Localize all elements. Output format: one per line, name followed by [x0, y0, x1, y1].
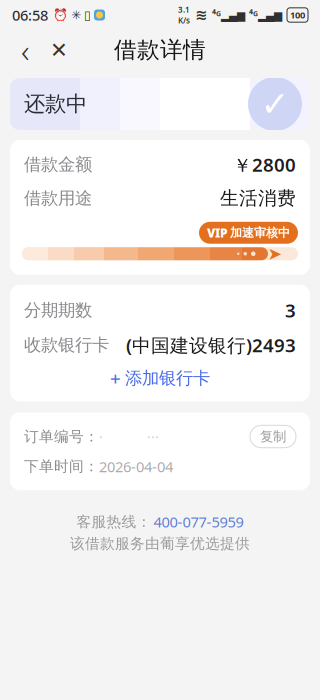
- button[interactable]: 关闭: [42, 30, 76, 70]
- staticText: 100: [290, 9, 305, 21]
- staticText: ≋: [195, 7, 207, 23]
- staticText: 06:58: [12, 5, 48, 25]
- button[interactable]: 返回: [8, 30, 42, 70]
- staticText: 400-077-5959: [153, 512, 243, 532]
- staticText: 借款用途: [24, 188, 92, 209]
- staticText: 还款中: [24, 91, 87, 117]
- staticText: (中国建设银行)2493: [126, 332, 296, 357]
- staticText: 收款银行卡: [24, 334, 109, 356]
- staticText: 该借款服务由葡享优选提供: [70, 535, 250, 553]
- staticText: ⁴ᴳ▂▄▆: [212, 8, 245, 22]
- staticText: ⏰: [53, 8, 68, 22]
- staticText: 3.1: [178, 4, 190, 15]
- staticText: · ···: [99, 427, 159, 446]
- staticText: ￥2800: [233, 152, 296, 177]
- staticText: 生活消费: [220, 187, 296, 210]
- staticText: 3: [285, 298, 296, 323]
- staticText: 订单编号：: [24, 427, 99, 445]
- staticText: +: [110, 366, 121, 391]
- button[interactable]: 400-077-5959: [153, 512, 243, 532]
- staticText: K/s: [178, 15, 190, 26]
- staticText: 分期期数: [24, 299, 92, 321]
- staticText: ‹: [21, 29, 29, 71]
- staticText: ✳: [71, 8, 81, 22]
- staticText: 添加银行卡: [125, 368, 210, 389]
- staticText: 2026-04-04: [99, 457, 173, 476]
- staticText: ➤: [267, 244, 282, 264]
- staticText: 借款详情: [114, 36, 206, 64]
- button[interactable]: +: [22, 367, 298, 389]
- staticText: 下单时间：: [24, 457, 99, 475]
- staticText: ✓: [260, 84, 289, 124]
- staticText: ▯: [84, 8, 91, 22]
- staticText: ⁴ᴳ▂▄▆: [249, 8, 282, 22]
- staticText: ✕: [50, 38, 68, 62]
- staticText: 客服热线：: [76, 513, 151, 531]
- staticText: 借款金额: [24, 154, 92, 175]
- button[interactable]: 复制: [250, 425, 296, 448]
- staticText: VIP: [207, 225, 228, 241]
- staticText: 加速审核中: [230, 225, 290, 240]
- staticText: 复制: [260, 428, 286, 445]
